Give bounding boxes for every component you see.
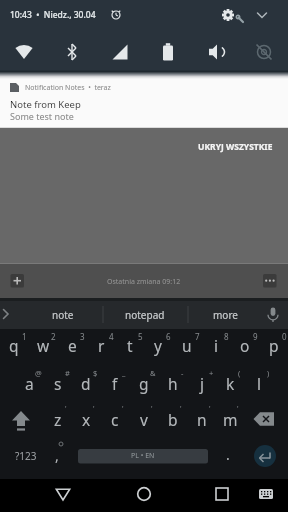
button[interactable]: p <box>260 329 288 361</box>
staticText: UKRYJ WSZYSTKIE <box>198 141 273 153</box>
button[interactable]: m <box>216 403 244 435</box>
button[interactable]: q <box>0 329 28 361</box>
staticText: m <box>223 409 238 430</box>
button[interactable]: notepad <box>105 301 185 329</box>
button[interactable]: c <box>101 403 129 435</box>
button[interactable] <box>8 36 40 68</box>
button[interactable]: Notification Notes • teraz <box>0 79 288 128</box>
button[interactable] <box>56 36 88 68</box>
button[interactable]: UKRYJ WSZYSTKIE <box>0 139 288 155</box>
button[interactable] <box>4 403 38 435</box>
staticText: 1 <box>22 331 27 342</box>
staticText: h <box>168 373 178 394</box>
button[interactable]: k <box>216 367 244 399</box>
staticText: . <box>226 445 230 464</box>
button[interactable] <box>262 300 288 328</box>
button[interactable] <box>0 300 16 328</box>
button[interactable] <box>78 449 208 464</box>
staticText: @ <box>35 368 42 378</box>
button[interactable]: a <box>15 367 43 399</box>
staticText: y <box>154 335 162 356</box>
button[interactable]: l <box>245 367 273 399</box>
button[interactable] <box>45 479 81 512</box>
button[interactable]: i <box>202 329 230 361</box>
staticText: more <box>213 308 238 322</box>
button[interactable]: d <box>72 367 100 399</box>
staticText: z <box>54 409 62 430</box>
button[interactable]: j <box>188 367 216 399</box>
button[interactable]: o <box>231 329 259 361</box>
button[interactable] <box>252 479 282 512</box>
staticText: 9 <box>253 331 258 342</box>
button[interactable] <box>126 479 162 512</box>
button[interactable] <box>104 36 136 68</box>
button[interactable] <box>152 36 184 68</box>
staticText: - <box>181 368 184 378</box>
staticText: x <box>82 409 91 430</box>
button[interactable]: n <box>188 403 216 435</box>
button[interactable] <box>253 444 277 468</box>
staticText: 3 <box>80 331 85 342</box>
button[interactable]: ?123 <box>7 441 45 471</box>
button[interactable]: z <box>44 403 72 435</box>
button[interactable]: t <box>116 329 144 361</box>
button[interactable]: x <box>72 403 100 435</box>
button[interactable]: v <box>130 403 158 435</box>
staticText: , <box>55 446 59 465</box>
staticText: ?123 <box>15 449 37 463</box>
staticText: 10:43 • Niedz., 30.04 <box>10 9 96 21</box>
staticText: ' <box>93 404 95 414</box>
button[interactable]: f <box>101 367 129 399</box>
staticText: q <box>9 335 19 356</box>
staticText: ' <box>151 404 153 414</box>
button[interactable]: u <box>173 329 201 361</box>
staticText: e <box>68 335 77 356</box>
staticText: PL • EN <box>131 451 155 461</box>
staticText: j <box>200 373 204 394</box>
staticText: 7 <box>195 331 200 342</box>
button[interactable] <box>6 270 28 292</box>
staticText: c <box>111 409 119 430</box>
button[interactable]: note <box>24 301 102 329</box>
staticText: notepad <box>125 308 165 322</box>
staticText: _ <box>122 368 126 378</box>
button[interactable]: r <box>87 329 115 361</box>
button[interactable]: s <box>44 367 72 399</box>
staticText: note <box>52 308 74 322</box>
staticText: 5 <box>138 331 143 342</box>
button[interactable] <box>219 5 245 27</box>
button[interactable] <box>248 36 280 68</box>
button[interactable]: h <box>159 367 187 399</box>
staticText: s <box>54 373 62 394</box>
staticText: & <box>150 368 156 378</box>
staticText: n <box>197 409 207 430</box>
staticText: Note from Keep <box>10 98 81 111</box>
staticText: ' <box>65 404 67 414</box>
staticText: v <box>140 409 148 430</box>
button[interactable]: , <box>45 440 69 470</box>
button[interactable]: . <box>216 439 240 469</box>
button[interactable]: more <box>190 301 260 329</box>
button[interactable]: e <box>58 329 86 361</box>
button[interactable]: w <box>29 329 57 361</box>
button[interactable]: y <box>144 329 172 361</box>
button[interactable]: b <box>159 403 187 435</box>
staticText: b <box>168 409 178 430</box>
staticText: w <box>37 335 50 356</box>
button[interactable] <box>259 270 281 292</box>
staticText: Some test note <box>10 110 74 122</box>
button[interactable] <box>247 403 281 435</box>
staticText: i <box>214 335 218 356</box>
button[interactable] <box>250 5 274 27</box>
staticText: ) <box>267 368 270 378</box>
staticText: ' <box>122 404 124 414</box>
button[interactable]: g <box>130 367 158 399</box>
staticText: f <box>112 373 118 394</box>
button[interactable] <box>200 36 232 68</box>
button[interactable] <box>204 479 240 512</box>
staticText: + <box>209 368 214 378</box>
staticText: l <box>257 373 261 394</box>
staticText: 0 <box>282 331 287 342</box>
staticText: 2 <box>51 331 56 342</box>
staticText: t <box>127 335 133 356</box>
